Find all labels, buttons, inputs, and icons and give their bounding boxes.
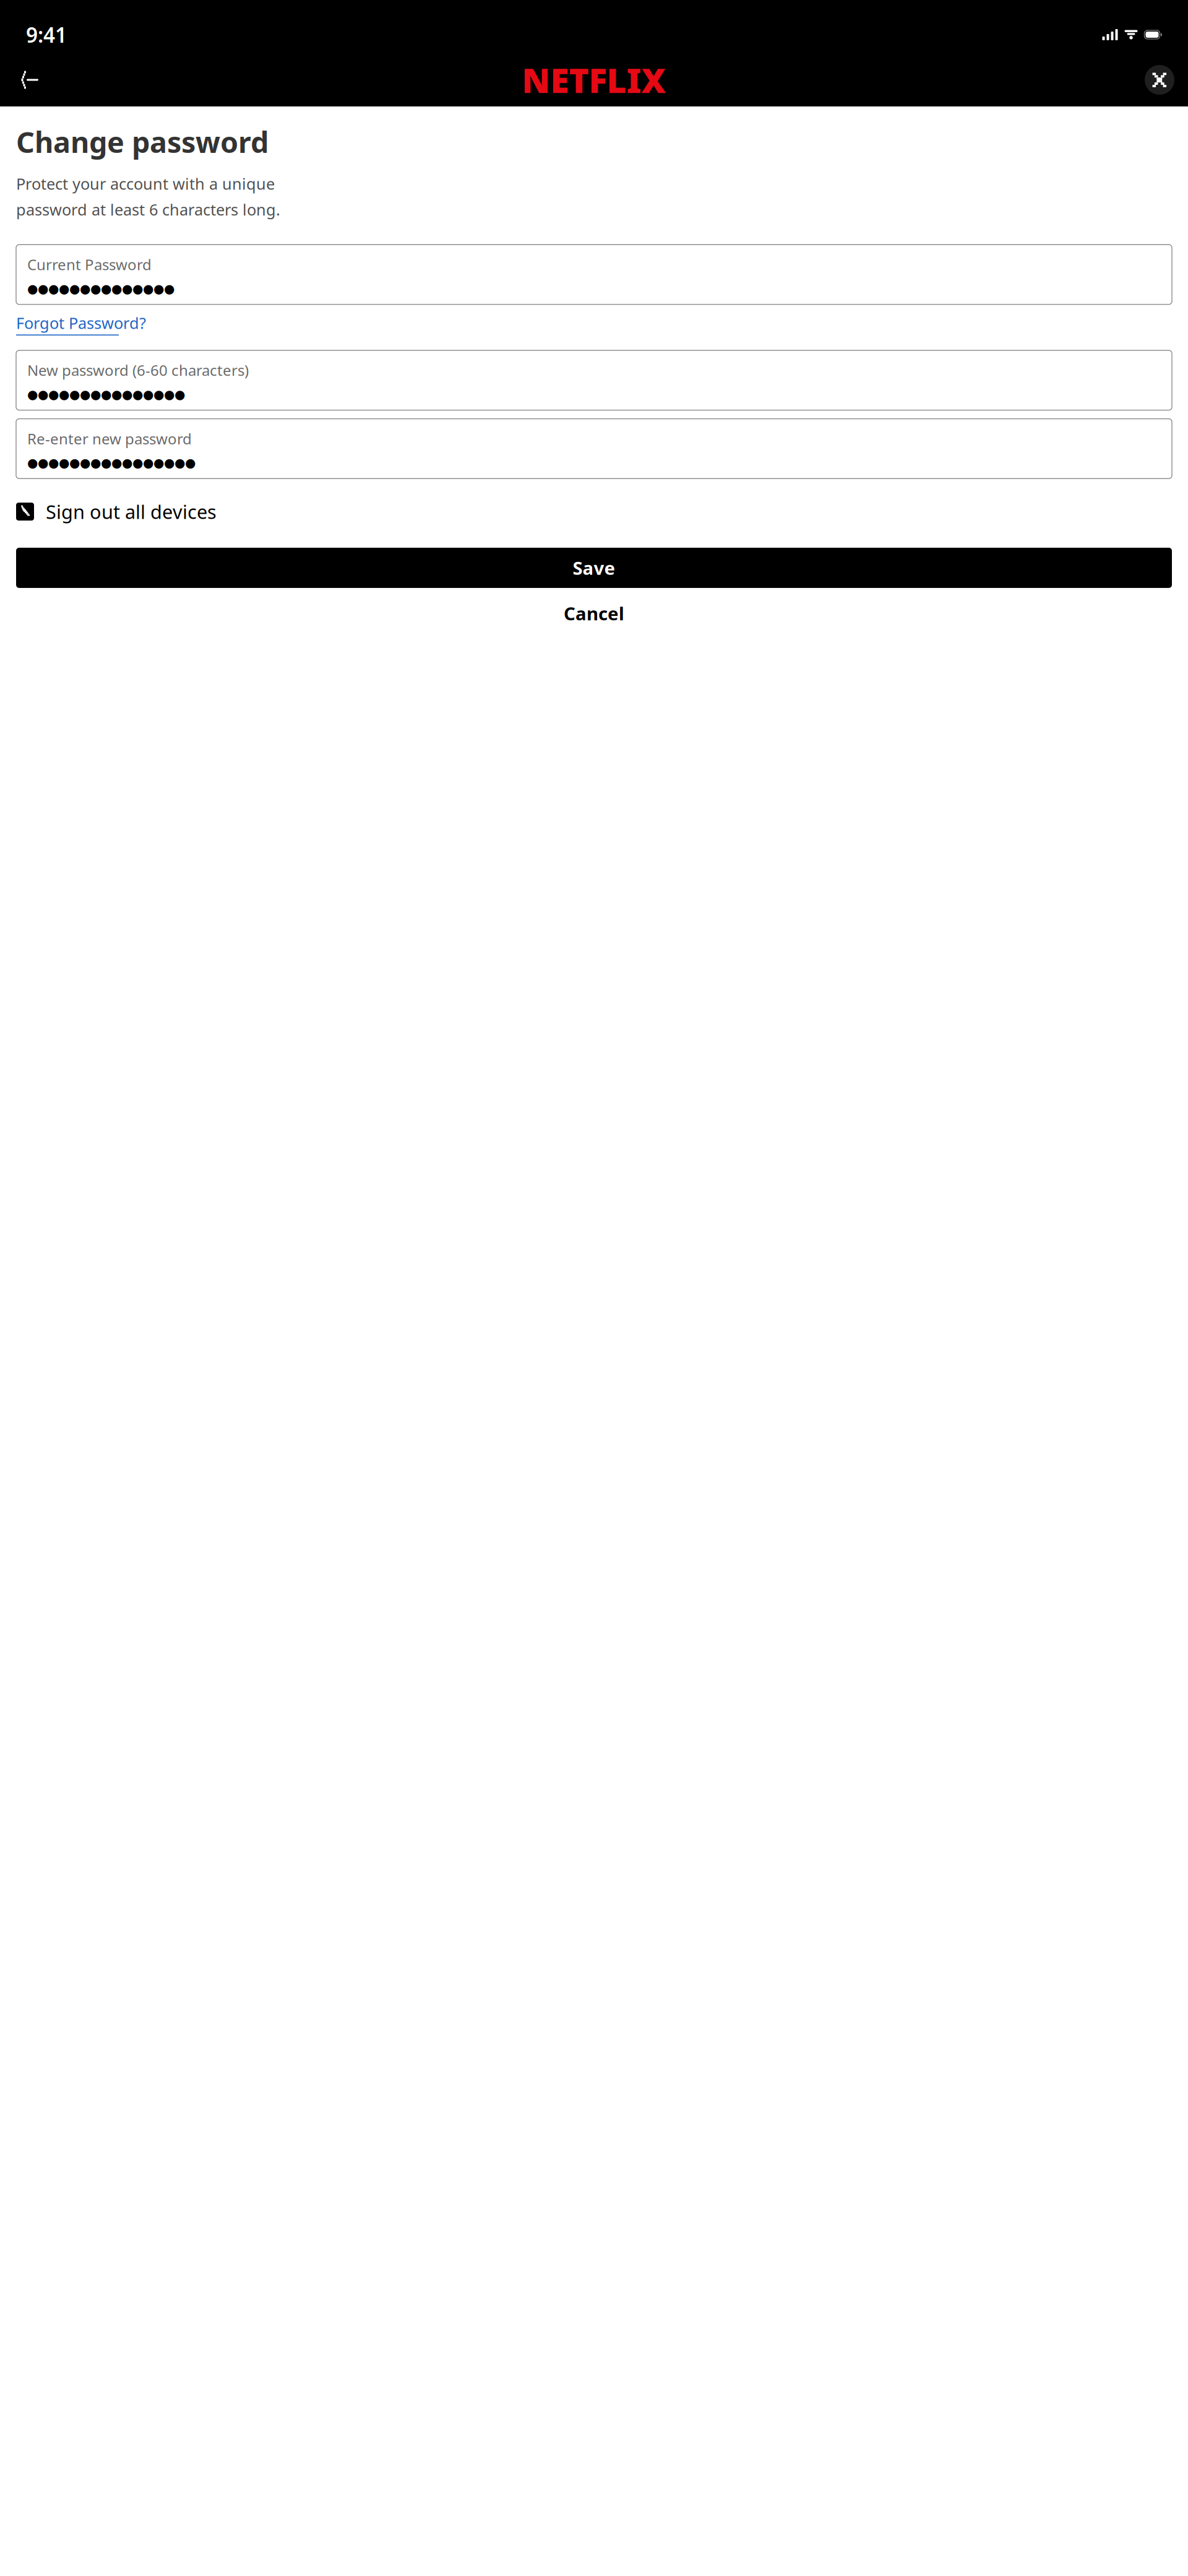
button[interactable]: Sign out all devices [16,496,1172,527]
staticText: New password (6-60 characters) [27,360,249,380]
staticText: ●●●●●●●●●●●●●● [27,282,174,296]
button[interactable]: Cancel [16,594,1172,632]
button[interactable]: Current Password [16,245,1172,304]
button[interactable]: Close [1142,63,1177,97]
staticText: Forgot Password? [16,312,146,333]
staticText: Cancel [564,601,624,625]
button[interactable]: Save [16,548,1172,588]
staticText: Change password [16,123,269,161]
button[interactable]: New password (6-60 characters) [16,350,1172,410]
staticText: Save [573,556,615,580]
staticText: ●●●●●●●●●●●●●●●● [27,456,196,470]
staticText: password at least 6 characters long. [16,199,280,220]
staticText: Current Password [27,255,152,274]
button[interactable]: Back [11,63,46,97]
button[interactable]: Re-enter new password [16,419,1172,479]
staticText: Protect your account with a unique [16,173,275,194]
staticText: 9:41 [26,21,67,48]
staticText: Re-enter new password [27,429,192,448]
staticText: ●●●●●●●●●●●●●●● [27,387,185,401]
staticText: Sign out all devices [46,499,217,524]
button[interactable]: Forgot Password? [16,312,146,335]
staticText: NETFLIX [522,57,666,102]
